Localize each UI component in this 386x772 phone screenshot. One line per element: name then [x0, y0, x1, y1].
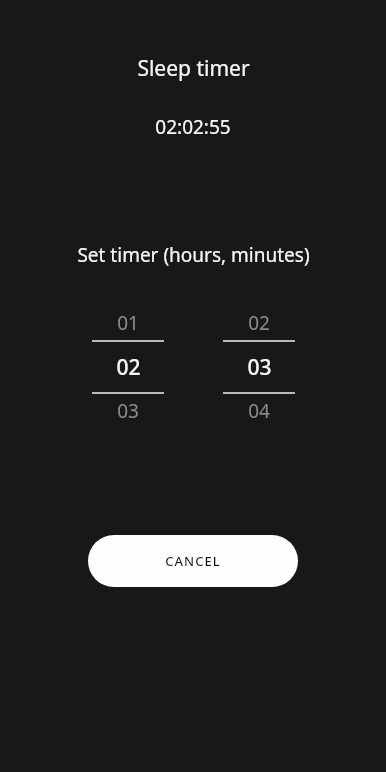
button[interactable]: 03 [73, 396, 183, 426]
staticText: 01 [117, 310, 139, 336]
button[interactable]: CANCEL [88, 535, 298, 587]
staticText: 04 [248, 398, 270, 424]
button[interactable]: 02 [73, 342, 183, 392]
staticText: 02 [248, 310, 270, 336]
staticText: CANCEL [165, 552, 221, 570]
staticText: 03 [247, 353, 272, 382]
button[interactable]: 03 [204, 342, 314, 392]
button[interactable]: 01 [73, 308, 183, 338]
staticText: 02:02:55 [155, 114, 231, 140]
staticText: 02 [116, 353, 141, 382]
button[interactable]: 04 [204, 396, 314, 426]
staticText: Sleep timer [137, 54, 250, 83]
other: Hours picker [73, 308, 183, 426]
other: Minutes picker [204, 308, 314, 426]
staticText: Set timer (hours, minutes) [77, 242, 310, 268]
staticText: 03 [117, 398, 139, 424]
button[interactable]: 02 [204, 308, 314, 338]
